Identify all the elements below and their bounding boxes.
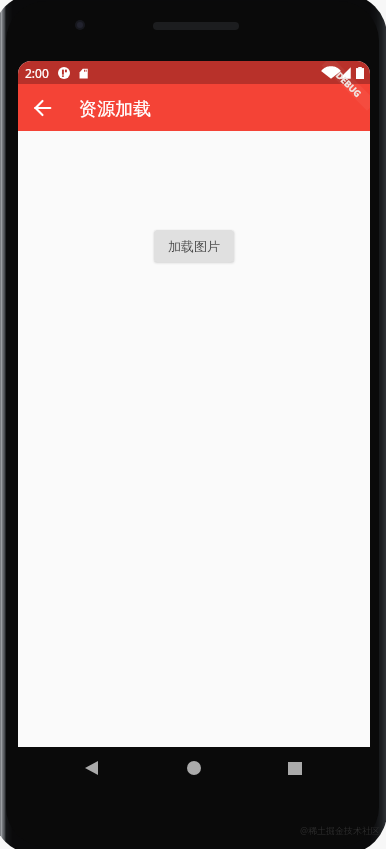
staticText: @稀土掘金技术社区 [300, 824, 381, 836]
button[interactable]: Back [69, 746, 113, 790]
button[interactable]: Recents [273, 746, 317, 790]
button[interactable]: 加载图片 [154, 230, 234, 262]
button[interactable]: Home [172, 746, 216, 790]
staticText: 2:00 [25, 65, 49, 81]
staticText: 加载图片 [168, 238, 220, 254]
button[interactable]: Back [20, 86, 64, 130]
staticText: DEBUG [334, 69, 364, 99]
staticText: 资源加载 [79, 98, 151, 121]
